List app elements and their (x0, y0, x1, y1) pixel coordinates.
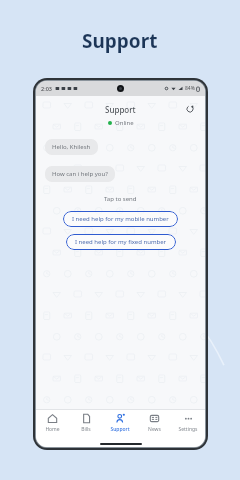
staticText: Home (45, 426, 60, 433)
staticText: I need help for my fixed number (75, 238, 167, 246)
staticText: Support (82, 28, 158, 54)
staticText: Tap to send (104, 195, 137, 203)
staticText: Online (115, 119, 134, 127)
staticText: News (148, 426, 161, 433)
button[interactable]: Bills (69, 410, 103, 440)
staticText: 84% (185, 85, 195, 92)
staticText: Settings (178, 426, 198, 433)
staticText: 2:03 (41, 85, 52, 92)
button[interactable]: I need help for my fixed number (66, 234, 176, 250)
staticText: How can i help you? (52, 170, 108, 178)
staticText: I need help for my mobile number (72, 215, 169, 223)
button[interactable]: I need help for my mobile number (63, 211, 178, 227)
button[interactable]: News (137, 410, 171, 440)
staticText: Support (105, 104, 136, 115)
button[interactable]: Settings (171, 410, 205, 440)
staticText: Bills (81, 426, 91, 433)
button[interactable]: Refresh (183, 102, 197, 116)
button[interactable]: How can i help you? (45, 166, 115, 182)
staticText: Support (110, 426, 130, 433)
staticText: Hello, Khilesh (52, 143, 91, 151)
button[interactable]: Home (36, 410, 69, 440)
button[interactable]: Support (103, 410, 137, 440)
button[interactable]: Hello, Khilesh (45, 139, 98, 155)
